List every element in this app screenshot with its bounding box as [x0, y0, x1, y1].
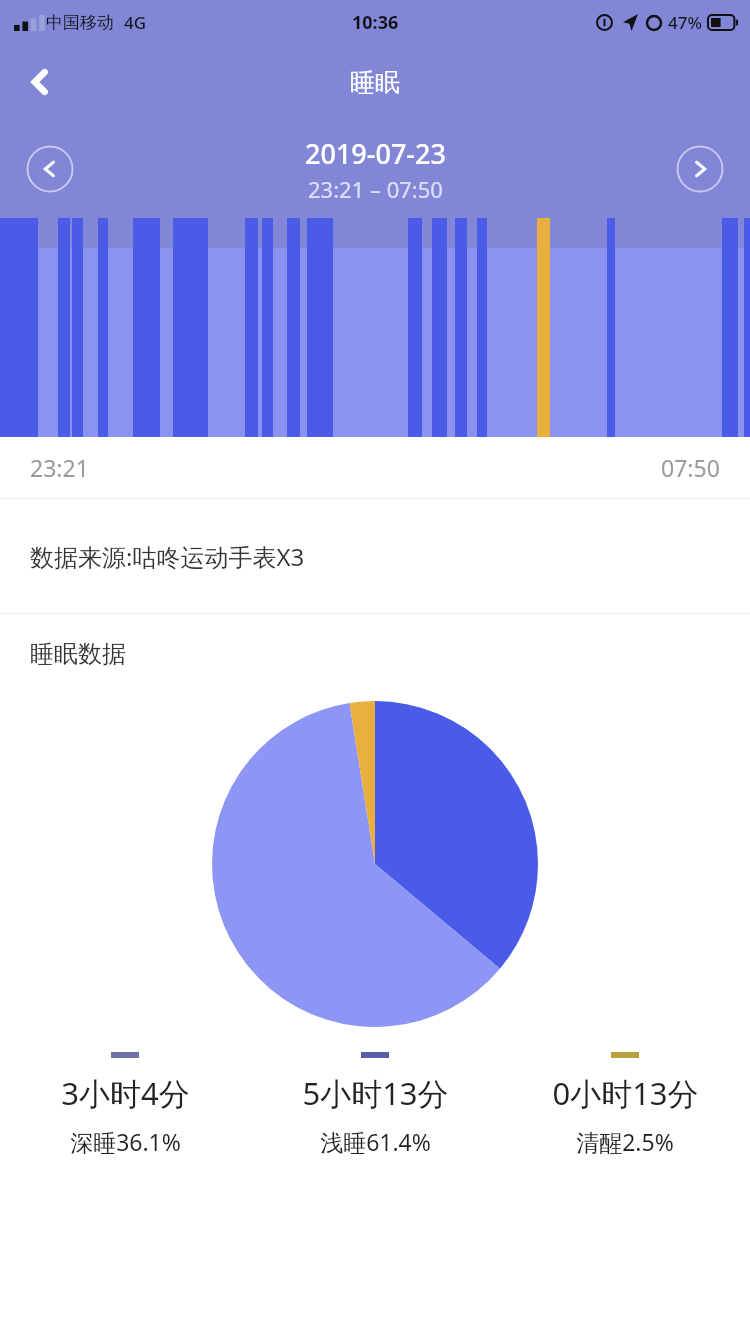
staticText: 5小时13分 [302, 1072, 449, 1114]
staticText: 数据来源:咕咚运动手表X3 [30, 540, 305, 573]
staticText: 10:36 [352, 10, 399, 35]
staticText: 0小时13分 [552, 1072, 699, 1114]
staticText: 浅睡61.4% [320, 1126, 431, 1157]
staticText: 3小时4分 [61, 1072, 190, 1114]
staticText: 47% [668, 11, 702, 34]
button[interactable]: Back [8, 50, 72, 114]
staticText: 清醒2.5% [576, 1126, 674, 1157]
button[interactable]: 3小时4分 [0, 1052, 250, 1157]
button[interactable]: Previous day [26, 145, 74, 193]
staticText: 4G [124, 11, 147, 34]
staticText: 睡眠 [350, 67, 400, 98]
staticText: 睡眠数据 [30, 639, 126, 669]
staticText: 07:50 [661, 452, 720, 483]
button[interactable]: Next day [676, 145, 724, 193]
staticText: 深睡36.1% [70, 1126, 181, 1157]
staticText: 23:21 – 07:50 [308, 174, 443, 204]
button[interactable]: 0小时13分 [500, 1052, 750, 1157]
staticText: 2019-07-23 [305, 135, 446, 172]
staticText: 中国移动 [46, 12, 114, 33]
staticText: 23:21 [30, 452, 89, 483]
button[interactable]: 5小时13分 [250, 1052, 500, 1157]
